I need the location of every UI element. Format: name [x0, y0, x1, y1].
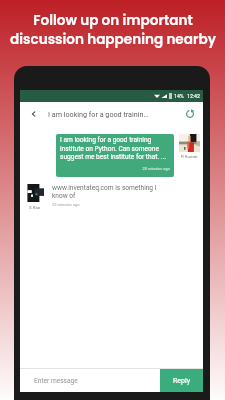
button[interactable]: Back	[20, 102, 48, 126]
staticText: discussion happening nearby	[10, 30, 216, 49]
staticText: 28 minutes ago	[60, 166, 170, 171]
button[interactable]: Enter message	[20, 369, 160, 392]
staticText: 12:42	[187, 93, 200, 99]
staticText: Reply	[173, 377, 190, 385]
staticText: Enter message	[34, 377, 78, 385]
staticText: I am looking for a good trainin…	[48, 110, 149, 118]
staticText: I am looking for a good training institu…	[60, 136, 170, 160]
staticText: R Kumar	[181, 154, 198, 159]
staticText: www.inventateq.com is something I know o…	[52, 184, 158, 200]
button[interactable]: I am looking for a good training institu…	[56, 134, 174, 177]
staticText: 14%	[174, 93, 184, 99]
button[interactable]: Refresh	[177, 102, 203, 126]
staticText: Follow up on important	[33, 11, 193, 30]
staticText: S Rao	[29, 205, 41, 210]
staticText: 22 minutes ago	[52, 202, 80, 207]
button[interactable]: Reply	[160, 369, 203, 392]
